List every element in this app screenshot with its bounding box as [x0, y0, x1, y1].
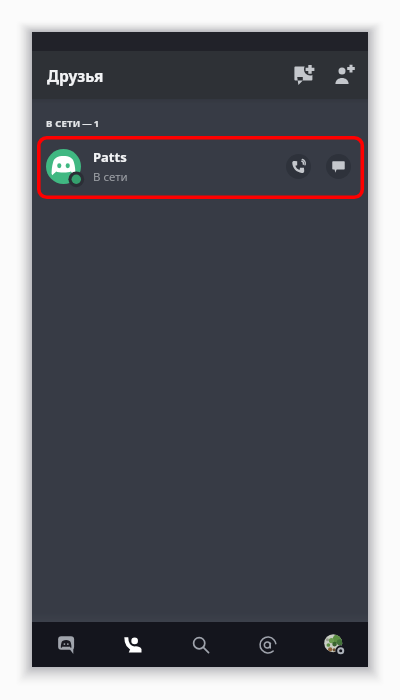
button[interactable]: Friends — [100, 622, 167, 667]
button[interactable]: Add friend — [324, 55, 364, 95]
staticText: В СЕТИ — 1 — [46, 117, 100, 130]
button[interactable]: Patts — [32, 136, 368, 197]
button[interactable]: Servers — [32, 622, 100, 667]
staticText: Patts — [93, 148, 127, 166]
button[interactable]: Profile — [301, 622, 368, 667]
button[interactable]: Mentions — [234, 622, 301, 667]
button[interactable]: Search — [167, 622, 234, 667]
staticText: Друзья — [47, 65, 104, 86]
button[interactable]: New message — [284, 55, 324, 95]
staticText: В сети — [93, 169, 128, 185]
button[interactable]: Message — [326, 154, 351, 179]
button[interactable]: Call — [286, 154, 311, 179]
